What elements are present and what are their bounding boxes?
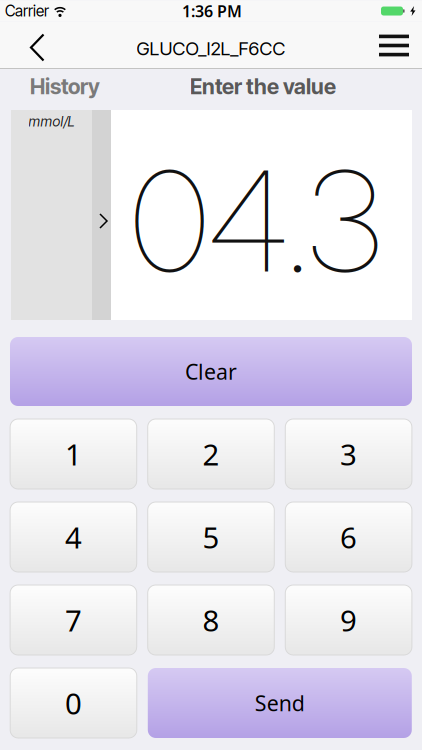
button[interactable]: 4 bbox=[10, 502, 137, 572]
button[interactable]: 7 bbox=[10, 585, 137, 655]
button[interactable] bbox=[366, 22, 422, 69]
staticText: 2 bbox=[202, 434, 219, 473]
button[interactable] bbox=[0, 22, 56, 69]
staticText: 1 bbox=[65, 434, 82, 473]
staticText: History bbox=[30, 74, 100, 99]
staticText: 0 bbox=[65, 683, 82, 722]
staticText: 5 bbox=[202, 517, 219, 556]
staticText: 6 bbox=[340, 517, 357, 556]
button[interactable]: 6 bbox=[285, 502, 412, 572]
staticText: 4 bbox=[65, 517, 82, 556]
button[interactable]: Clear bbox=[10, 337, 412, 406]
button[interactable]: Send bbox=[148, 668, 412, 738]
staticText: 04.3 bbox=[131, 137, 382, 305]
button[interactable]: 5 bbox=[148, 502, 274, 572]
button[interactable]: 1 bbox=[10, 419, 137, 489]
staticText: 8 bbox=[202, 600, 219, 639]
staticText: 7 bbox=[65, 600, 82, 639]
staticText: 3 bbox=[340, 434, 357, 473]
button[interactable]: 2 bbox=[148, 419, 274, 489]
staticText: 9 bbox=[340, 600, 357, 639]
staticText: mmol/L bbox=[28, 113, 74, 130]
staticText: Enter the value bbox=[190, 74, 336, 99]
button[interactable]: mmol/L bbox=[11, 110, 111, 320]
button[interactable]: 9 bbox=[285, 585, 412, 655]
staticText: Send bbox=[255, 689, 305, 717]
staticText: Clear bbox=[185, 357, 237, 386]
button[interactable]: 8 bbox=[148, 585, 274, 655]
button[interactable]: Enter the value bbox=[190, 66, 336, 107]
staticText: Carrier bbox=[5, 2, 49, 20]
button[interactable]: 0 bbox=[10, 668, 137, 738]
button[interactable]: 3 bbox=[285, 419, 412, 489]
staticText: GLUCO_I2L_F6CC bbox=[136, 37, 285, 60]
staticText: 1:36 PM bbox=[182, 0, 242, 22]
button[interactable]: History bbox=[0, 69, 130, 110]
